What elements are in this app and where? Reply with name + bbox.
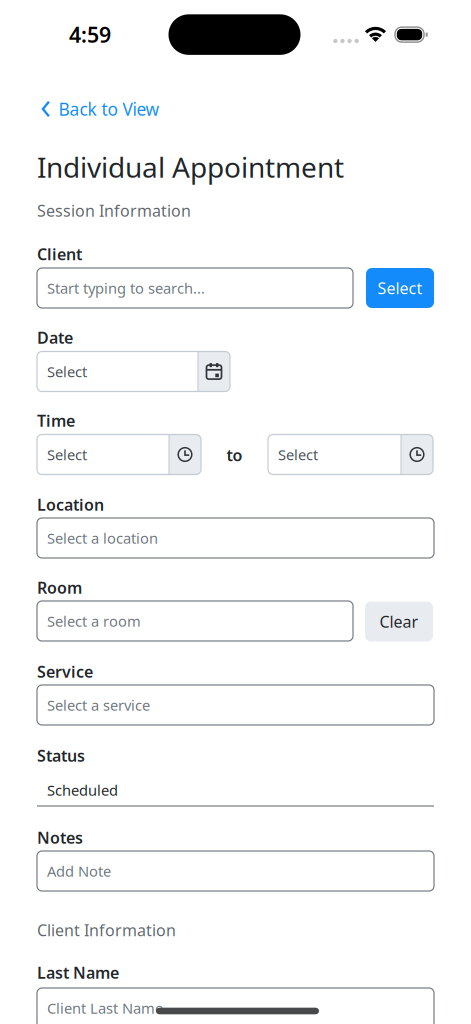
button[interactable]: Clear bbox=[365, 601, 433, 641]
staticText: Select a service bbox=[47, 695, 150, 715]
staticText: Session Information bbox=[37, 200, 191, 221]
button[interactable]: Back to View bbox=[41, 97, 159, 120]
staticText: Service bbox=[37, 661, 93, 682]
button[interactable]: Select bbox=[268, 434, 433, 474]
staticText: Clear bbox=[379, 611, 418, 632]
staticText: Add Note bbox=[47, 861, 111, 881]
staticText: Select bbox=[377, 277, 422, 299]
staticText: Room bbox=[37, 577, 82, 598]
staticText: Scheduled bbox=[47, 780, 118, 800]
staticText: Client Last Name bbox=[47, 998, 163, 1018]
button[interactable]: Select a location bbox=[37, 518, 434, 558]
staticText: Notes bbox=[37, 827, 83, 848]
staticText: Date bbox=[37, 327, 73, 348]
button[interactable]: Add Note bbox=[37, 851, 434, 891]
button[interactable]: Select bbox=[37, 434, 201, 474]
staticText: Time bbox=[37, 410, 75, 431]
button[interactable]: Select bbox=[366, 268, 434, 308]
button[interactable]: Scheduled bbox=[37, 770, 434, 810]
staticText: Select bbox=[278, 445, 318, 464]
staticText: 4:59 bbox=[69, 20, 111, 49]
staticText: Client Information bbox=[37, 919, 176, 941]
staticText: Select bbox=[47, 445, 87, 464]
staticText: Start typing to search... bbox=[47, 278, 205, 298]
staticText: Back to View bbox=[58, 97, 159, 120]
button[interactable]: Select a service bbox=[37, 685, 434, 725]
button[interactable]: Select bbox=[37, 351, 230, 391]
button[interactable]: Select a room bbox=[37, 601, 353, 641]
button[interactable]: Client Last Name bbox=[37, 988, 434, 1024]
staticText: to bbox=[226, 444, 242, 466]
staticText: Client bbox=[37, 243, 82, 265]
staticText: Location bbox=[37, 494, 104, 515]
staticText: Select bbox=[47, 362, 87, 381]
staticText: Last Name bbox=[37, 962, 119, 983]
staticText: Select a room bbox=[47, 611, 141, 631]
button[interactable]: Start typing to search... bbox=[37, 268, 353, 308]
staticText: Status bbox=[37, 745, 85, 766]
staticText: Select a location bbox=[47, 528, 158, 548]
staticText: Individual Appointment bbox=[37, 148, 344, 185]
